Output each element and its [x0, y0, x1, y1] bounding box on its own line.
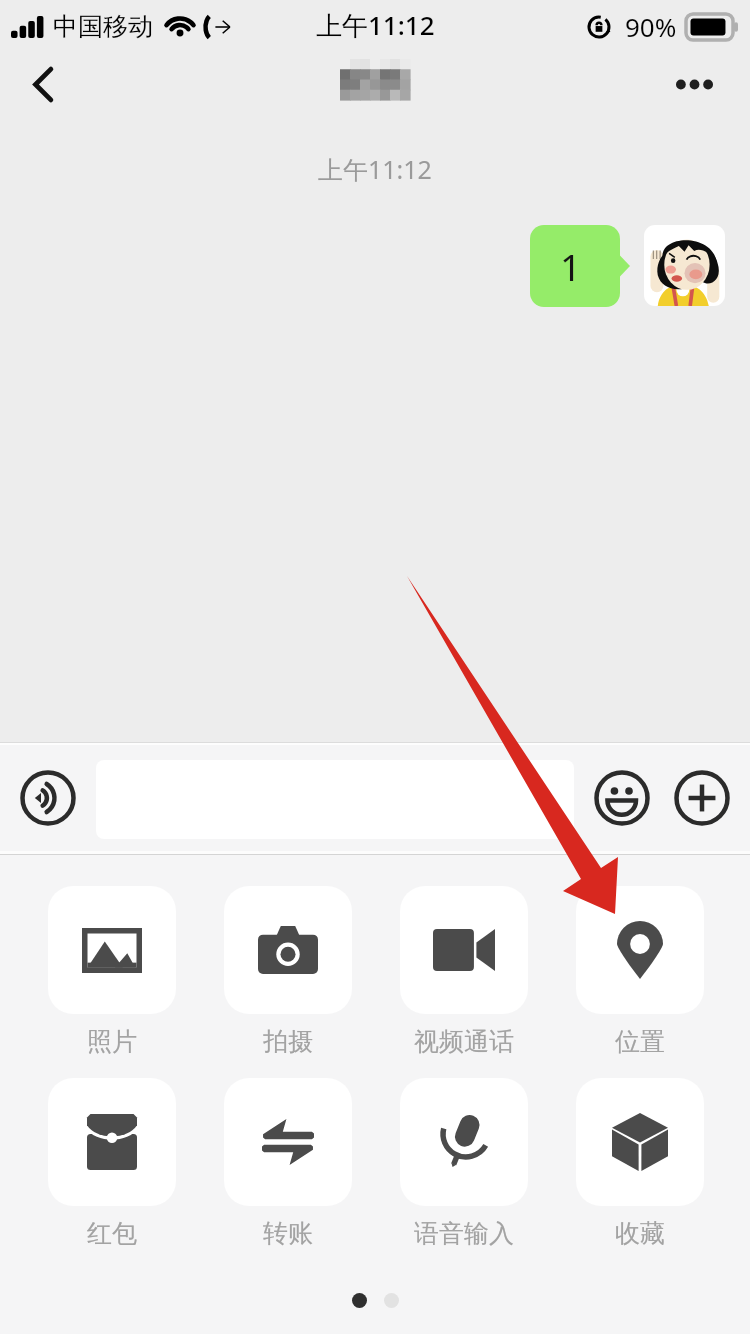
button[interactable]: 收藏	[576, 1078, 704, 1249]
button[interactable]: 转账	[224, 1078, 352, 1249]
staticText: 照片	[87, 1026, 137, 1057]
button[interactable]: 照片	[48, 886, 176, 1057]
button[interactable]: 拍摄	[224, 886, 352, 1057]
staticText: 中国移动	[53, 11, 153, 42]
staticText: 位置	[615, 1026, 665, 1057]
staticText: 收藏	[615, 1218, 665, 1249]
button[interactable]: Back	[8, 50, 76, 118]
staticText: 语音输入	[414, 1218, 514, 1249]
button[interactable]: More options	[660, 50, 728, 118]
button[interactable]: 红包	[48, 1078, 176, 1249]
staticText: 视频通话	[414, 1026, 514, 1057]
button[interactable]: 视频通话	[400, 886, 528, 1057]
staticText: 拍摄	[263, 1026, 313, 1057]
button[interactable]: Avatar	[644, 225, 725, 306]
staticText: 上午11:12	[316, 7, 435, 43]
staticText: 90%	[625, 9, 677, 44]
button[interactable]: Page 2	[384, 1293, 399, 1308]
button[interactable]: Message input	[96, 760, 574, 839]
staticText: 红包	[87, 1218, 137, 1249]
button[interactable]: 语音输入	[400, 1078, 528, 1249]
button[interactable]: 位置	[576, 886, 704, 1057]
button[interactable]: Voice input	[20, 770, 76, 826]
button[interactable]: 1	[530, 225, 630, 307]
staticText: 上午11:12	[318, 152, 432, 186]
staticText: 转账	[263, 1218, 313, 1249]
button[interactable]: Page 1	[352, 1293, 367, 1308]
staticText: 1	[560, 241, 582, 291]
button[interactable]: More	[674, 770, 730, 826]
button[interactable]: Emoji	[594, 770, 650, 826]
